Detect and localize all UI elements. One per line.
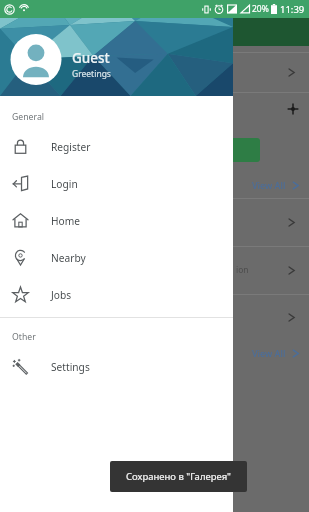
button[interactable]: Register: [0, 128, 233, 165]
button[interactable]: View All: [0, 172, 309, 198]
button[interactable]: ion: [0, 246, 309, 294]
button[interactable]: Home: [0, 202, 233, 239]
button[interactable]: Settings: [0, 348, 233, 385]
button[interactable]: Move: [0, 92, 309, 126]
button[interactable]: Login: [0, 165, 233, 202]
staticText: View All: [252, 179, 286, 191]
button[interactable]: [0, 294, 309, 340]
button[interactable]: Guest: [0, 0, 233, 96]
staticText: 11:39: [280, 3, 305, 16]
staticText: Greetings: [72, 68, 111, 80]
button[interactable]: Nearby: [0, 239, 233, 276]
staticText: Сохранено в "Галерея": [126, 470, 231, 483]
staticText: Register: [51, 140, 91, 154]
button[interactable]: View All: [0, 340, 309, 366]
staticText: ion: [236, 264, 249, 276]
staticText: Home: [51, 214, 80, 228]
staticText: 20%: [252, 3, 269, 15]
staticText: Guest: [72, 49, 110, 67]
button[interactable]: Сохранено в "Галерея": [110, 461, 247, 492]
staticText: Nearby: [51, 251, 86, 265]
button[interactable]: Jobs: [0, 276, 233, 313]
staticText: Other: [12, 331, 36, 343]
staticText: Login: [51, 177, 78, 191]
button[interactable]: [200, 138, 260, 162]
staticText: Jobs: [51, 288, 72, 302]
button[interactable]: [0, 198, 309, 246]
button[interactable]: [0, 52, 309, 92]
staticText: Settings: [51, 360, 90, 374]
staticText: General: [12, 111, 45, 123]
other: Move: [287, 103, 299, 115]
staticText: View All: [252, 347, 286, 359]
